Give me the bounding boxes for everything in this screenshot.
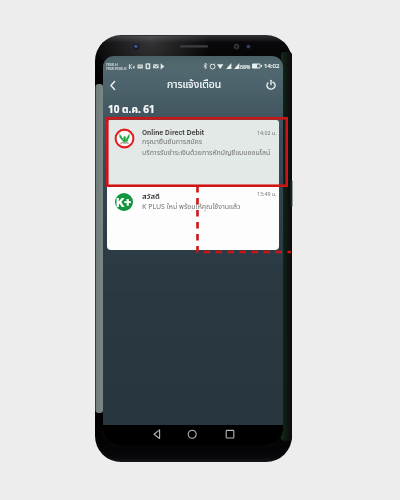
staticText: 13:49 น. xyxy=(257,190,277,198)
staticText: K PLUS ใหม่ พร้อมให้คุณใช้งานแล้ว xyxy=(142,202,241,213)
staticText: TRUE.TRUE-H xyxy=(106,66,127,70)
button[interactable]: K+ xyxy=(107,184,279,250)
staticText: สวัสดี xyxy=(142,191,160,202)
staticText: การแจ้งเตือน xyxy=(167,77,222,93)
button[interactable]: Back xyxy=(104,77,120,93)
staticText: K+ xyxy=(116,195,132,210)
staticText: 14:02 xyxy=(264,62,280,70)
staticText: กรุณายืนยันการสมัคร xyxy=(142,137,203,148)
staticText: 68% xyxy=(240,63,251,70)
staticText: บริการรับชำระเงินด้วยการหักบัญชีแบบออนไล… xyxy=(142,148,271,159)
staticText: 10 ต.ค. 61 xyxy=(108,102,155,117)
staticText: 14:02 น. xyxy=(257,129,277,137)
staticText: Online Direct Debit xyxy=(142,128,205,137)
button[interactable]: Online Direct Debit xyxy=(107,120,279,184)
staticText: TRUE-H xyxy=(106,62,118,66)
button[interactable]: Power xyxy=(263,77,279,93)
